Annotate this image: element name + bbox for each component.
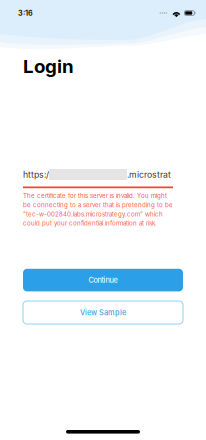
staticText: Continue (88, 276, 117, 285)
staticText: View Sample (80, 308, 126, 317)
staticText: The certificate for this server is inval… (23, 192, 173, 227)
button[interactable]: View Sample (23, 301, 183, 324)
staticText: .microstrat (127, 169, 171, 180)
button[interactable]: Continue (23, 269, 183, 291)
staticText: https:/ (23, 169, 49, 180)
staticText: Login (23, 55, 74, 78)
staticText: 3:16 (18, 9, 33, 17)
